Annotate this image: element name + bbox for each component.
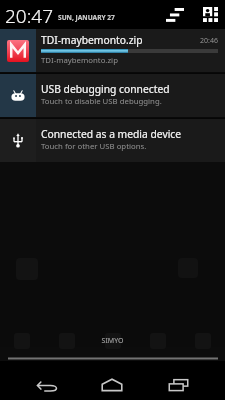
button[interactable]: Recent apps (145, 361, 211, 400)
button[interactable]: Home (79, 361, 145, 400)
staticText: SUN, JANUARY 27 (58, 13, 115, 22)
button[interactable]: TDI-maybemonto.zip (0, 29, 225, 72)
button[interactable]: Connected as a media device (0, 119, 225, 162)
staticText: TDI-maybemonto.zip (41, 55, 118, 66)
staticText: Touch to disable USB debugging. (41, 96, 162, 107)
staticText: TDI-maybemonto.zip (41, 33, 143, 47)
button[interactable]: Back (14, 361, 79, 400)
staticText: USB debugging connected (41, 82, 170, 96)
staticText: SIMYO (0, 336, 225, 346)
staticText: 20:46 (200, 36, 218, 46)
button[interactable]: Quick settings (200, 0, 220, 29)
staticText: Connected as a media device (41, 127, 182, 141)
button[interactable]: USB debugging connected (0, 74, 225, 117)
staticText: 20:47 (5, 3, 54, 29)
button[interactable]: Clear all notifications (163, 0, 187, 29)
staticText: Touch for other USB options. (41, 141, 147, 152)
